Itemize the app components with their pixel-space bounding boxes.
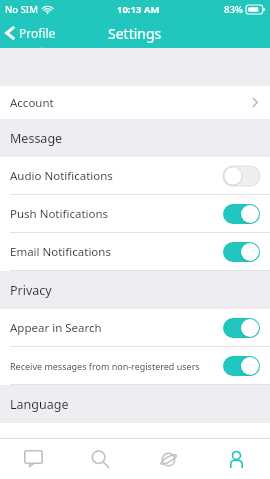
staticText: Privacy (10, 282, 52, 299)
staticText: Message (10, 130, 63, 147)
staticText: Receive messages from non-registered use… (10, 360, 200, 372)
staticText: Push Notifications (10, 206, 109, 222)
staticText: Email Notifications (10, 244, 111, 260)
button[interactable]: Toggle on (223, 204, 260, 224)
button[interactable]: Toggle on (223, 356, 260, 376)
button[interactable]: Toggle on (223, 242, 260, 262)
button[interactable]: Profile (0, 21, 64, 45)
staticText: Appear in Search (10, 320, 102, 336)
staticText: Audio Notifications (10, 168, 113, 184)
button[interactable]: Email Notifications (0, 233, 270, 270)
button[interactable]: Account (0, 86, 270, 119)
button[interactable]: Appear in Search (0, 309, 270, 346)
button[interactable]: Push Notifications (0, 195, 270, 232)
button[interactable]: Search (67, 439, 134, 479)
button[interactable]: Receive messages from non-registered use… (0, 347, 270, 384)
staticText: 10:13 AM (117, 3, 160, 16)
staticText: No SIM (5, 3, 38, 16)
button[interactable]: Messages (0, 439, 67, 479)
button[interactable]: Profile (202, 439, 270, 479)
staticText: Profile (19, 25, 56, 41)
staticText: 83% (224, 3, 243, 16)
staticText: uantrimang (60, 56, 227, 97)
button[interactable]: Toggle off (223, 166, 260, 186)
staticText: Settings (108, 24, 162, 43)
button[interactable]: Toggle on (223, 318, 260, 338)
button[interactable]: Audio Notifications (0, 157, 270, 194)
staticText: Account (10, 95, 54, 111)
staticText: Language (10, 396, 69, 413)
button[interactable]: Discover (134, 439, 202, 479)
